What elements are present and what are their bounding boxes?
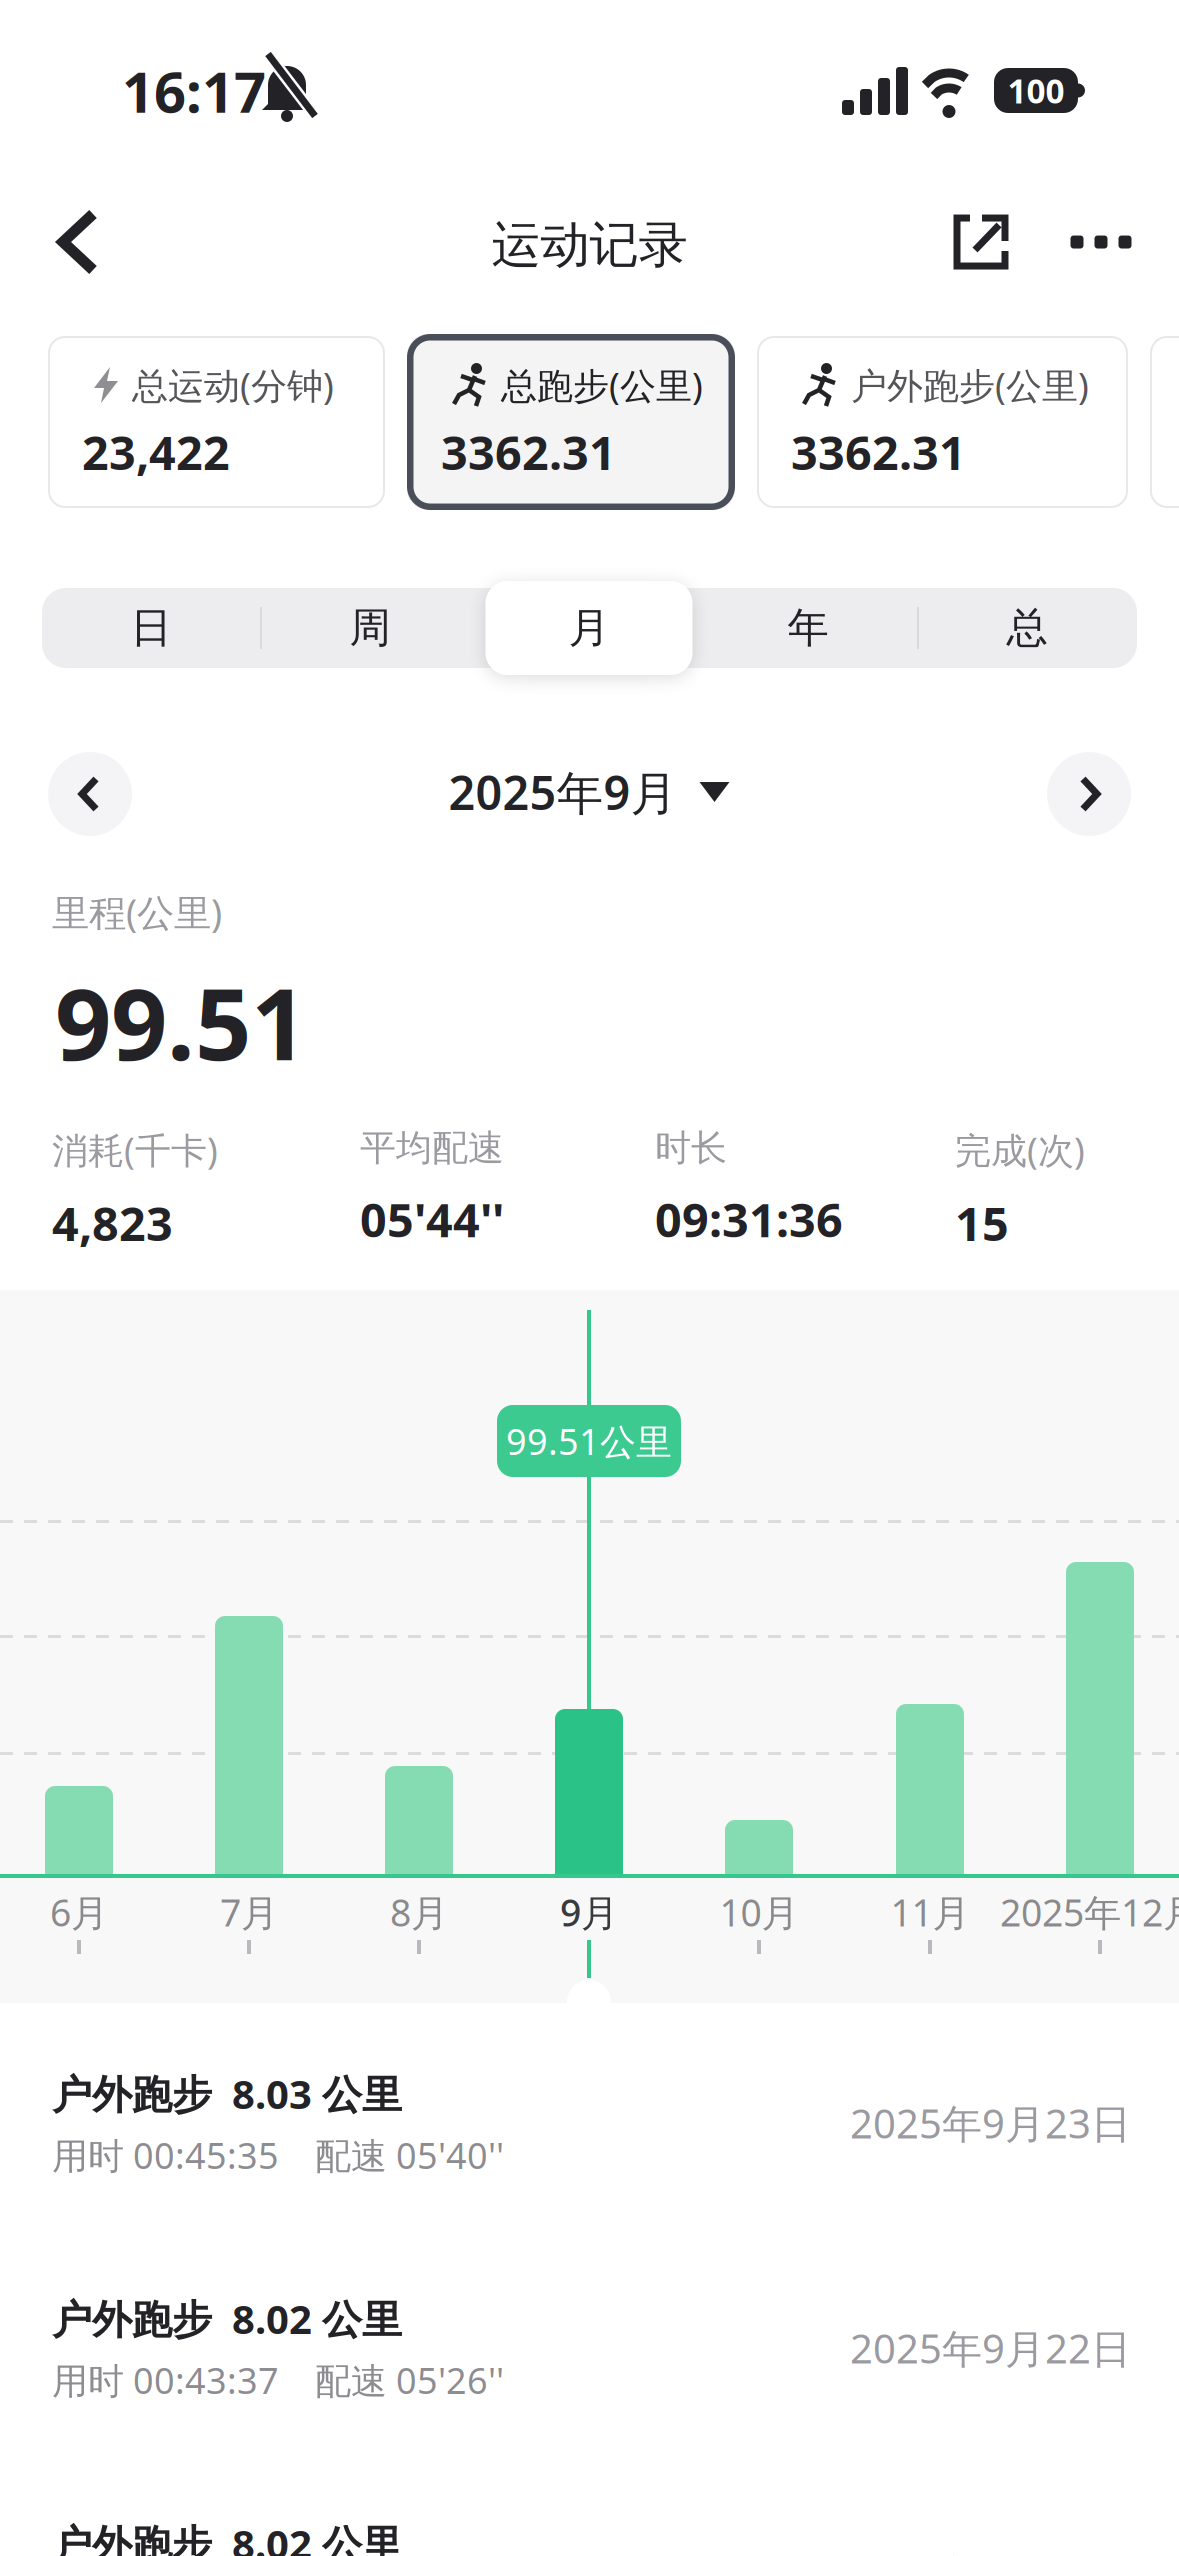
staticText: 里程(公里) [52,887,222,937]
button[interactable]: 总运动(分钟) [48,336,385,508]
staticText: 户外跑步 8.02 公里 [52,2292,402,2345]
staticText: 月 [568,603,609,653]
staticText: 户外跑步(公里) [851,361,1089,409]
button[interactable]: Back [39,202,115,282]
button[interactable]: 室内跑步(公里) [1150,336,1179,508]
staticText: 总跑步(公里) [501,361,703,409]
button[interactable]: 年 [698,588,917,668]
staticText: 11月 [890,1887,969,1937]
button[interactable]: 2025年9月 [448,761,729,823]
staticText: 总运动(分钟) [132,361,334,409]
button[interactable]: 总跑步(公里) [407,334,735,510]
button[interactable]: 总 [917,588,1136,668]
staticText: 2025年9月23日 [850,2096,1131,2149]
button[interactable]: Share [944,205,1018,279]
staticText: 2025年9月 [448,761,677,823]
staticText: 时长 [655,1126,727,1170]
staticText: 16:17 [122,54,266,128]
button[interactable]: 周 [260,588,479,668]
button[interactable]: More [1056,205,1146,279]
staticText: 用时 00:43:37 配速 05'26'' [52,2356,504,2404]
staticText: 09:31:36 [655,1188,843,1250]
staticText: 3362.31 [441,421,616,483]
staticText: 99.51公里 [506,1417,672,1465]
staticText: 完成(次) [955,1126,1085,1174]
staticText: 100 [1007,68,1064,113]
staticText: 户外跑步 8.03 公里 [52,2067,402,2120]
button[interactable]: 户外跑步 8.03 公里 [0,2010,1179,2235]
staticText: 2025年9月22日 [850,2321,1131,2374]
staticText: 3362.31 [791,421,966,483]
staticText: 9月 [560,1887,618,1937]
staticText: 年 [787,603,828,653]
button[interactable]: Next month [1047,752,1131,836]
button[interactable]: 户外跑步 8.02 公里 [0,2460,1179,2556]
staticText: 10月 [719,1887,798,1937]
staticText: 2025年12月 [1000,1887,1179,1937]
staticText: 8月 [390,1887,448,1937]
staticText: 6月 [50,1887,108,1937]
staticText: 平均配速 [360,1126,504,1170]
staticText: 消耗(千卡) [52,1126,218,1174]
staticText: 周 [349,603,390,653]
button[interactable]: 户外跑步 8.02 公里 [0,2235,1179,2460]
staticText: 23,422 [82,421,230,483]
button[interactable]: 月 [485,581,692,675]
staticText: 99.51 [55,956,307,1087]
staticText: 7月 [220,1887,278,1937]
staticText: 户外跑步 8.02 公里 [52,2517,402,2556]
staticText: 运动记录 [491,215,687,275]
button[interactable]: Previous month [48,752,132,836]
staticText: 15 [955,1192,1009,1254]
staticText: 总 [1006,603,1047,653]
staticText: 日 [130,603,171,653]
staticText: 4,823 [52,1192,173,1254]
staticText: 用时 00:45:35 配速 05'40'' [52,2131,504,2179]
staticText: 05'44'' [360,1188,504,1250]
button[interactable]: 日 [41,588,260,668]
button[interactable]: 户外跑步(公里) [757,336,1128,508]
